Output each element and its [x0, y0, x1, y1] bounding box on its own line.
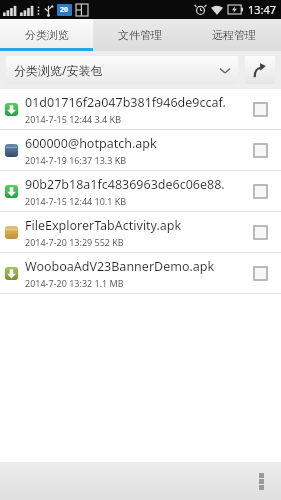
staticText: 20 — [60, 5, 69, 15]
button[interactable]: 分类浏览/安装包 — [6, 56, 238, 84]
button[interactable]: Select file — [247, 219, 273, 245]
staticText: 2014-7-20 13:29 552 KB — [25, 236, 124, 248]
button[interactable]: WooboaAdV23BannerDemo.apk — [0, 253, 281, 293]
staticText: 文件管理 — [118, 28, 162, 42]
staticText: 分类浏览 — [25, 28, 69, 42]
staticText: 2014-7-20 13:32 1.1 MB — [25, 277, 124, 289]
button[interactable]: Select file — [247, 137, 273, 163]
staticText: 分类浏览/安装包 — [14, 62, 220, 78]
staticText: 2014-7-15 12:44 10.1 KB — [25, 195, 127, 207]
button[interactable]: Up one level — [245, 56, 275, 84]
staticText: 600000@hotpatch.apk — [25, 135, 157, 152]
staticText: FileExplorerTabActivity.apk — [25, 217, 182, 234]
button[interactable]: More options — [247, 466, 275, 496]
button[interactable]: 90b27b18a1fc4836963de6c06e88. — [0, 171, 281, 211]
staticText: 2014-7-19 16:37 13.3 KB — [25, 154, 127, 166]
button[interactable]: Select file — [247, 260, 273, 286]
button[interactable]: 远程管理 — [187, 19, 281, 51]
staticText: 2014-7-15 12:44 3.4 KB — [25, 113, 121, 125]
staticText: 01d01716f2a047b381f946de9ccaf. — [25, 94, 226, 111]
staticText: 远程管理 — [212, 28, 256, 42]
staticText: 90b27b18a1fc4836963de6c06e88. — [25, 176, 225, 193]
button[interactable]: Select file — [247, 96, 273, 122]
button[interactable]: FileExplorerTabActivity.apk — [0, 212, 281, 252]
button[interactable]: 分类浏览 — [0, 19, 93, 51]
staticText: WooboaAdV23BannerDemo.apk — [25, 258, 215, 275]
button[interactable]: 600000@hotpatch.apk — [0, 130, 281, 170]
button[interactable]: 01d01716f2a047b381f946de9ccaf. — [0, 89, 281, 129]
button[interactable]: 文件管理 — [93, 19, 187, 51]
staticText: 13:47 — [248, 2, 277, 17]
button[interactable]: Select file — [247, 178, 273, 204]
